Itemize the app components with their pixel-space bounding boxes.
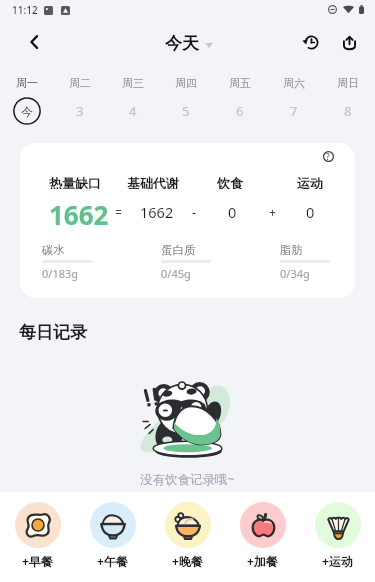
staticText: 周一 [16,76,38,90]
staticText: 蛋白质 [161,243,196,257]
staticText: + [269,204,276,220]
staticText: 没有饮食记录哦~ [140,471,235,488]
staticText: 周六 [283,76,305,90]
button[interactable]: 今天 [165,33,213,54]
staticText: 6 [236,102,244,120]
staticText: 周二 [69,76,91,90]
button[interactable]: +晚餐 [150,492,225,582]
staticText: 1662 [49,197,109,227]
staticText: - [192,204,196,220]
staticText: 饮食 [217,175,243,189]
button[interactable]: Back [16,24,52,60]
staticText: 每日记录 [19,322,87,343]
staticText: ? [326,151,330,162]
staticText: 运动 [297,175,323,189]
staticText: 8 [344,102,352,120]
button[interactable]: +午餐 [75,492,150,582]
staticText: 基础代谢 [127,175,179,189]
button[interactable]: 今 [0,97,53,125]
staticText: 周四 [175,76,197,90]
button[interactable]: Help [318,146,338,166]
button[interactable]: 5 [159,97,213,125]
button[interactable]: Share [332,25,366,59]
staticText: = [115,204,122,220]
button[interactable]: 3 [53,97,106,125]
button[interactable]: 8 [321,97,375,125]
staticText: 3 [76,102,84,120]
staticText: 5 [182,102,190,120]
button[interactable]: +加餐 [225,492,300,582]
staticText: +早餐 [22,553,53,569]
staticText: 热量缺口 [49,175,101,189]
staticText: 周五 [229,76,251,90]
staticText: 脂肪 [280,243,303,257]
staticText: 7 [290,102,298,120]
staticText: 4 [129,102,137,120]
staticText: 周日 [337,76,359,90]
staticText: 1662 [140,202,174,222]
staticText: 0/45g [161,266,191,281]
staticText: 0 [228,202,237,222]
staticText: +午餐 [97,553,128,569]
staticText: 周三 [122,76,144,90]
button[interactable]: 4 [106,97,159,125]
staticText: 0/34g [280,266,310,281]
staticText: 0/183g [42,266,79,281]
staticText: 11:12 [12,3,38,17]
staticText: +运动 [322,553,353,569]
button[interactable]: 7 [267,97,321,125]
button[interactable]: History [294,25,328,59]
staticText: 今天 [165,33,199,54]
button[interactable]: +早餐 [0,492,75,582]
button[interactable]: +运动 [300,492,375,582]
staticText: +晚餐 [172,553,203,569]
button[interactable]: 6 [213,97,267,125]
staticText: 碳水 [42,243,65,257]
staticText: 今 [21,104,33,119]
staticText: +加餐 [247,553,278,569]
staticText: 0 [306,202,315,222]
